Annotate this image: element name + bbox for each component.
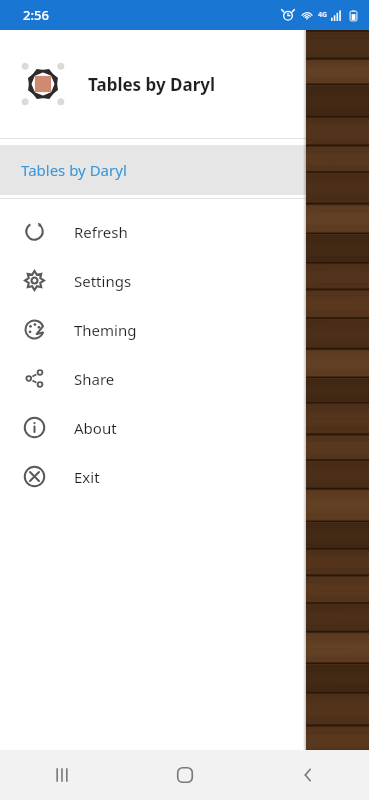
staticText: Settings: [74, 271, 132, 291]
staticText: Theming: [74, 320, 137, 340]
button[interactable]: Theming: [0, 305, 306, 354]
button[interactable]: Home: [123, 750, 246, 800]
button[interactable]: Refresh: [0, 207, 306, 256]
button[interactable]: About: [0, 403, 306, 452]
staticText: Share: [74, 369, 115, 389]
staticText: 2:56: [23, 6, 49, 24]
button[interactable]: Recents: [0, 750, 123, 800]
button[interactable]: Settings: [0, 256, 306, 305]
staticText: Exit: [74, 467, 100, 487]
staticText: Tables by Daryl: [21, 160, 127, 180]
button[interactable]: Back: [246, 750, 369, 800]
staticText: Refresh: [74, 222, 128, 242]
button[interactable]: Tables by Daryl: [0, 145, 306, 195]
staticText: 4G: [318, 10, 328, 20]
button[interactable]: Exit: [0, 452, 306, 501]
staticText: About: [74, 418, 117, 438]
button[interactable]: Share: [0, 354, 306, 403]
staticText: Tables by Daryl: [88, 73, 216, 96]
